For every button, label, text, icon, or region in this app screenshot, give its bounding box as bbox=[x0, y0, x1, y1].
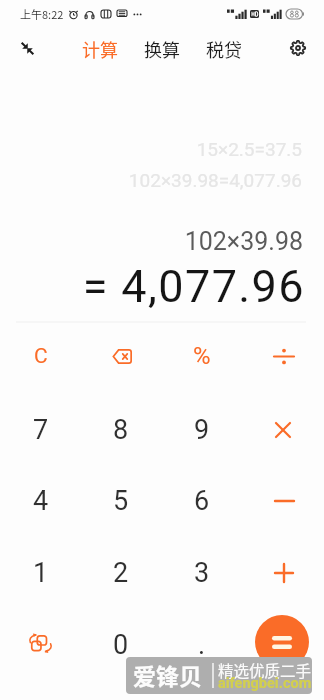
staticText: 上午8:22 bbox=[20, 6, 64, 22]
button[interactable]: Multiply bbox=[243, 395, 323, 465]
staticText: 102×39.98=4,077.96 bbox=[128, 169, 302, 191]
button[interactable]: 7 bbox=[1, 395, 81, 465]
button[interactable]: 2 bbox=[81, 538, 161, 608]
button[interactable]: Divide bbox=[244, 321, 324, 391]
staticText: 计算 bbox=[82, 36, 118, 62]
button[interactable]: . bbox=[162, 610, 242, 680]
button[interactable]: 换算 bbox=[140, 36, 184, 62]
button[interactable]: Equals bbox=[255, 615, 309, 669]
button[interactable]: 0 bbox=[81, 610, 161, 680]
button[interactable]: Settings bbox=[284, 34, 312, 62]
button[interactable]: 1 bbox=[1, 538, 81, 608]
button[interactable]: 6 bbox=[162, 466, 242, 536]
button[interactable]: Convert units bbox=[0, 608, 80, 678]
staticText: 2 bbox=[113, 557, 129, 589]
button[interactable]: 8 bbox=[81, 395, 161, 465]
button[interactable]: 3 bbox=[162, 538, 242, 608]
staticText: 精选优质二手 bbox=[218, 659, 312, 681]
staticText: 3 bbox=[194, 557, 210, 589]
button[interactable]: C bbox=[1, 321, 81, 391]
staticText: 换算 bbox=[144, 36, 180, 62]
staticText: aifengbei.com bbox=[218, 675, 312, 692]
staticText: = 4,077.96 bbox=[82, 260, 305, 313]
staticText: 8 bbox=[113, 414, 129, 446]
button[interactable]: 5 bbox=[81, 466, 161, 536]
staticText: C bbox=[34, 344, 48, 369]
staticText: 4 bbox=[33, 485, 49, 517]
button[interactable]: 9 bbox=[162, 395, 242, 465]
staticText: % bbox=[193, 342, 211, 370]
staticText: 15×2.5=37.5 bbox=[196, 138, 302, 160]
staticText: 102×39.98 bbox=[184, 227, 303, 256]
staticText: 7 bbox=[33, 414, 49, 446]
staticText: 5 bbox=[113, 485, 129, 517]
button[interactable]: 计算 bbox=[78, 36, 122, 62]
button[interactable]: 4 bbox=[1, 466, 81, 536]
staticText: 税贷 bbox=[206, 36, 242, 62]
staticText: . bbox=[198, 629, 206, 661]
staticText: 爱锋贝 bbox=[133, 658, 202, 691]
button[interactable]: Backspace bbox=[82, 321, 162, 391]
staticText: 1 bbox=[33, 557, 49, 589]
staticText: 0 bbox=[113, 629, 129, 661]
button[interactable]: 税贷 bbox=[202, 36, 246, 62]
button[interactable]: Collapse bbox=[13, 34, 41, 62]
button[interactable]: Plus bbox=[244, 538, 324, 608]
staticText: 6 bbox=[194, 485, 210, 517]
button[interactable]: % bbox=[162, 321, 242, 391]
staticText: 9 bbox=[194, 414, 210, 446]
button[interactable]: Minus bbox=[244, 466, 324, 536]
